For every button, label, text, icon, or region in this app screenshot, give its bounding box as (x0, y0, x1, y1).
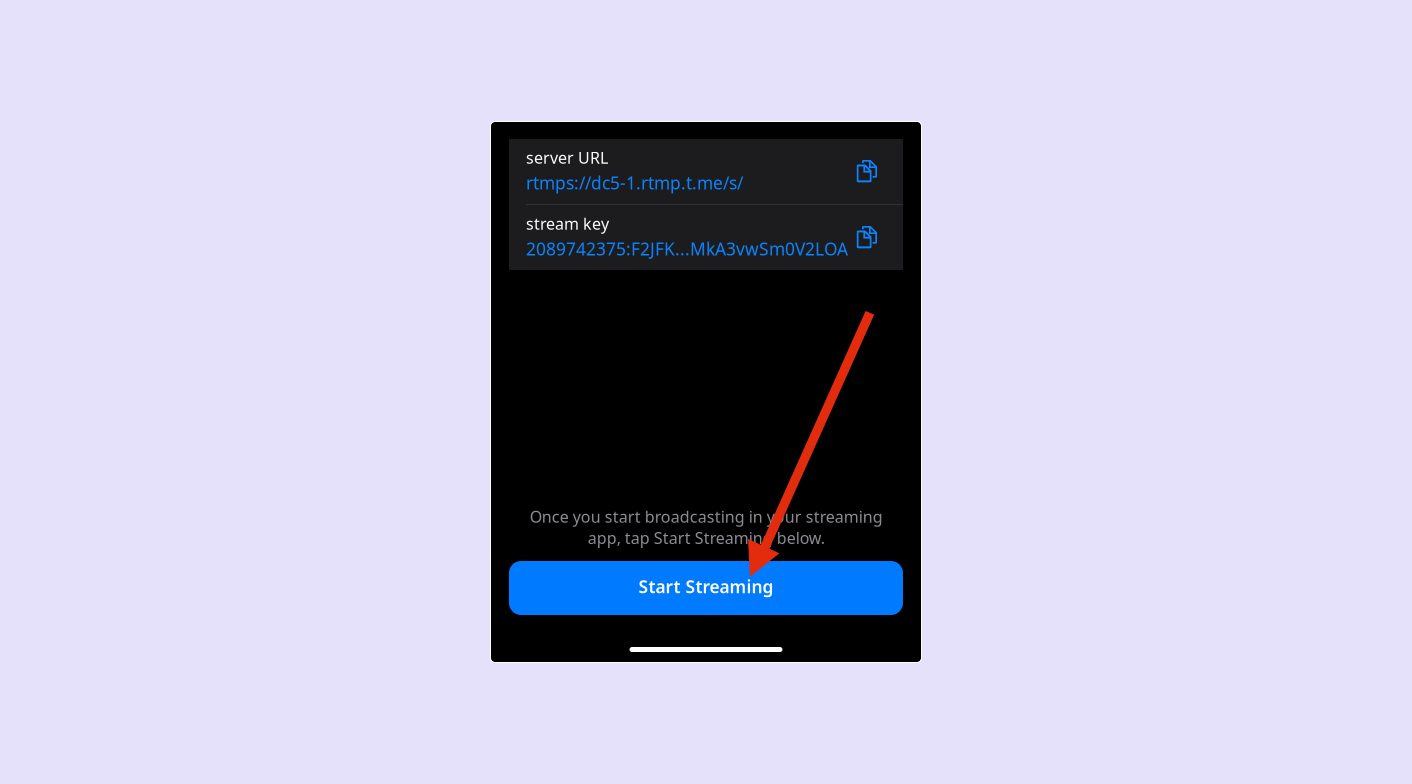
button[interactable]: Copy stream key (509, 205, 903, 270)
staticText: rtmps://dc5-1.rtmp.t.me/s/ (526, 171, 743, 194)
staticText: server URL (526, 147, 608, 168)
button[interactable]: Start Streaming (509, 561, 903, 615)
button[interactable]: Copy server URL (509, 139, 903, 204)
staticText: Once you start broadcasting in your stre… (529, 506, 882, 548)
staticText: 2089742375:F2JFK...MkA3vwSm0V2LOA (526, 237, 848, 260)
staticText: stream key (526, 213, 609, 234)
staticText: Start Streaming (638, 575, 773, 598)
